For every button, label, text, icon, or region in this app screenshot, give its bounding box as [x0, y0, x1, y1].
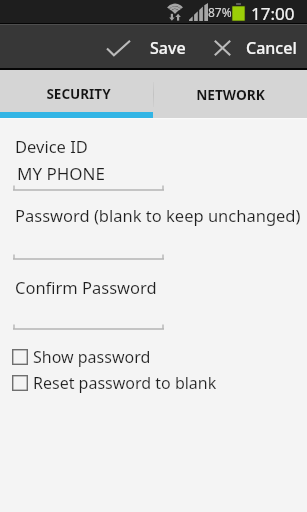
staticText: Cancel [246, 37, 297, 59]
button[interactable]: NETWORK [153, 70, 307, 118]
staticText: NETWORK [196, 85, 265, 104]
staticText: Reset password to blank [33, 372, 217, 394]
button[interactable]: Show password [12, 346, 151, 368]
button[interactable]: Save [98, 26, 195, 69]
button[interactable]: Device ID [13, 158, 164, 192]
staticText: Save [150, 37, 186, 59]
staticText: MY PHONE [17, 162, 105, 185]
staticText: Confirm Password [15, 276, 157, 298]
button[interactable]: Confirm Password [13, 297, 164, 331]
staticText: SECURITY [46, 85, 111, 103]
staticText: Password (blank to keep unchanged) [15, 204, 301, 226]
button[interactable]: Cancel [204, 26, 307, 69]
button[interactable]: SECURITY [0, 70, 153, 118]
button[interactable]: Reset password to blank [12, 372, 217, 394]
staticText: 17:00 [251, 2, 295, 25]
button[interactable]: Password [13, 227, 164, 261]
staticText: Device ID [15, 135, 88, 157]
staticText: 87% [208, 4, 232, 20]
staticText: Show password [33, 346, 151, 368]
